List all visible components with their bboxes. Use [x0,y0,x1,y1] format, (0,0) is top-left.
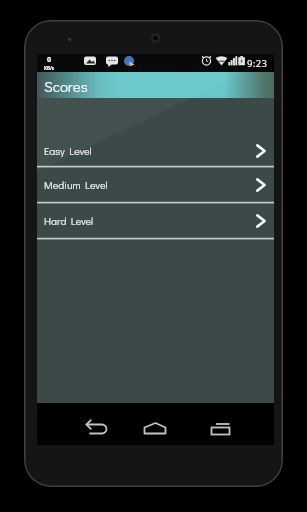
staticText: Scores [44,76,88,96]
button[interactable]: Easy Level [37,137,274,165]
staticText: Easy Level [44,144,254,158]
button[interactable]: Hard Level [37,204,274,237]
staticText: KB/s [44,65,55,71]
staticText: 9:23 [247,57,268,70]
button[interactable] [201,408,241,445]
button[interactable]: Medium Level [37,168,274,201]
button[interactable] [135,408,177,445]
staticText: Medium Level [44,178,254,192]
button[interactable] [76,408,116,445]
staticText: 0 [47,55,52,65]
staticText: Hard Level [44,214,254,228]
